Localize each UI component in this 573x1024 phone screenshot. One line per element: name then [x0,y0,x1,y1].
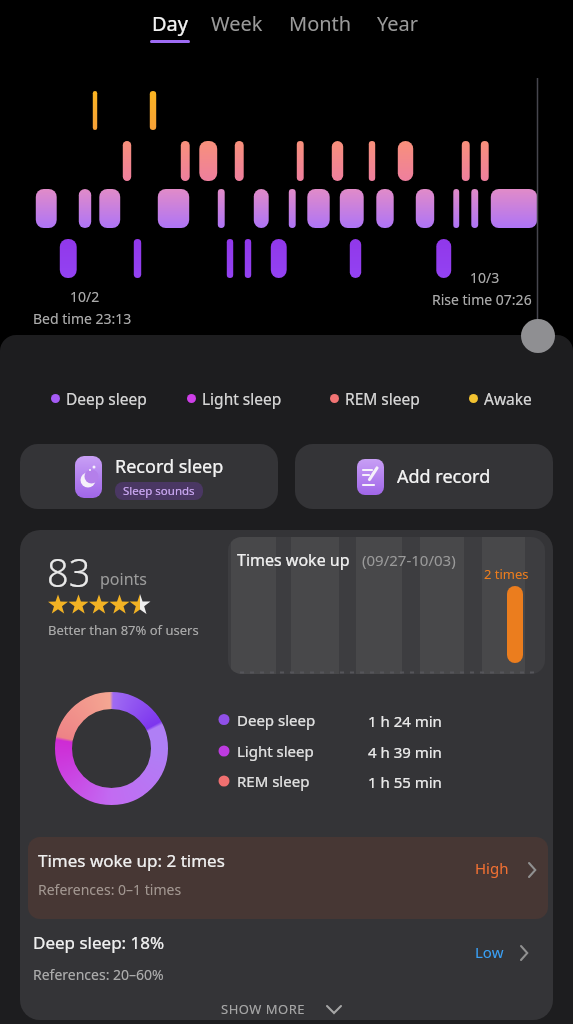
staticText: 1 h 24 min [368,711,442,731]
staticText: Week [211,10,263,37]
button[interactable]: Day [140,4,202,46]
button[interactable]: REM sleep [330,386,420,410]
staticText: REM sleep [237,771,310,791]
button[interactable]: Deep sleep [51,386,147,410]
staticText: (09/27-10/03) [362,550,456,570]
staticText: References: 0–1 times [38,880,182,899]
staticText: SHOW MORE [221,1000,306,1018]
staticText: Deep sleep [66,388,147,409]
staticText: Record sleep [115,454,224,479]
button[interactable]: Year [371,4,429,46]
staticText: Light sleep [202,388,282,409]
button[interactable]: Month [283,4,359,46]
button[interactable]: Add record [295,444,553,509]
staticText: Add record [397,464,491,489]
staticText: points [100,568,147,590]
staticText: 1 h 55 min [368,772,442,792]
staticText: References: 20–60% [33,965,164,984]
button[interactable] [521,319,555,353]
staticText: Bed time 23:13 [33,309,132,328]
staticText: 10/3 [470,268,500,287]
staticText: 4 h 39 min [368,742,442,762]
staticText: High [475,858,509,878]
staticText: 83 [47,546,91,598]
button[interactable]: SHOW MORE [180,1000,393,1020]
button[interactable]: Awake [469,386,532,410]
staticText: Sleep sounds [123,483,195,499]
button[interactable]: Deep sleep: 18% [20,925,553,1001]
button[interactable]: Record sleep [20,444,278,509]
staticText: Low [475,942,504,962]
staticText: Times woke up [237,549,354,571]
button[interactable]: Week [205,4,271,46]
staticText: 10/2 [70,287,100,306]
staticText: 2 times [484,565,529,583]
staticText: Times woke up: 2 times [38,849,225,872]
staticText: REM sleep [345,388,420,409]
button[interactable]: Times woke up: 2 times [28,837,548,919]
staticText: Light sleep [237,741,314,761]
button[interactable]: Times woke up [228,537,545,674]
staticText: Better than 87% of users [48,621,199,639]
staticText: Year [377,10,419,37]
staticText: Day [152,10,189,37]
staticText: Rise time 07:26 [432,290,532,309]
staticText: Month [289,10,352,37]
staticText: Deep sleep [237,710,316,730]
staticText: Awake [484,388,532,409]
button[interactable]: Light sleep [187,386,282,410]
staticText: Deep sleep: 18% [33,931,165,954]
